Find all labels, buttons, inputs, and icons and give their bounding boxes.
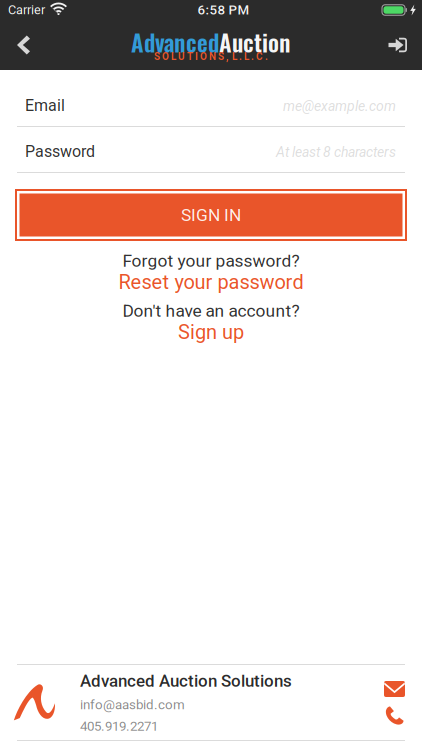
button[interactable]: Sign up [166,321,256,343]
staticText: Reset your password [118,270,303,294]
button[interactable]: Back [0,20,48,70]
button[interactable]: Sign in [370,20,422,70]
button[interactable]: Call us [381,702,408,729]
staticText: Auction [219,25,291,59]
staticText: info@aasbid.com [80,697,185,712]
staticText: Carrier [8,3,45,17]
button[interactable]: Reset your password [106,271,315,293]
staticText: Email [25,96,65,115]
staticText: Advanced Auction Solutions [80,671,292,691]
staticText: 405.919.2271 [80,718,158,734]
staticText: 6:58 PM [197,2,249,18]
staticText: SIGN IN [181,205,241,225]
staticText: Forgot your password? [122,251,299,271]
staticText: me@example.com [283,98,396,114]
staticText: Sign up [178,320,244,344]
staticText: At least 8 characters [276,144,396,160]
staticText: Advanced [131,25,219,59]
staticText: Password [25,142,95,161]
button[interactable]: SIGN IN [0,173,422,241]
button[interactable]: Email us [379,676,410,702]
staticText: Don't have an account? [122,301,299,321]
staticText: S O L U T I O N S , L . L . C . [154,51,268,62]
